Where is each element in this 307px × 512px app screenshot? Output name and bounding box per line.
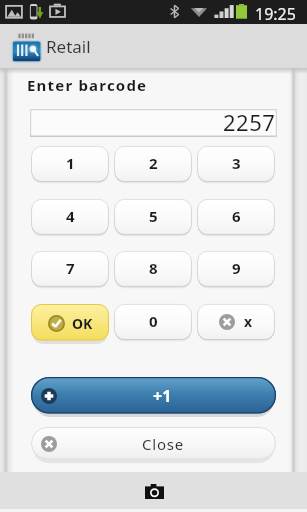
staticText: 2 [149, 153, 158, 173]
staticText: 1 [66, 153, 75, 173]
button[interactable]: 0 [114, 304, 192, 339]
button[interactable]: 9 [197, 251, 275, 286]
button[interactable]: 2257 [30, 109, 277, 137]
staticText: OK [72, 314, 93, 333]
staticText: 5 [149, 206, 158, 226]
staticText: 7 [66, 258, 75, 278]
staticText: Retail [46, 35, 91, 58]
button[interactable]: 2 [114, 146, 192, 181]
button[interactable]: 6 [197, 199, 275, 234]
staticText: 3 [232, 153, 241, 173]
button[interactable]: 5 [114, 199, 192, 234]
staticText: 6 [232, 206, 241, 226]
button[interactable]: Close [31, 427, 276, 461]
button[interactable]: 4 [31, 199, 109, 234]
staticText: Close [142, 434, 185, 454]
button[interactable]: +1 [31, 377, 276, 415]
button[interactable]: 8 [114, 251, 192, 286]
staticText: 2257 [223, 107, 276, 135]
button[interactable]: OK [31, 304, 109, 342]
button[interactable]: 3 [197, 146, 275, 181]
staticText: 4 [66, 206, 75, 226]
button[interactable]: 7 [31, 251, 109, 286]
staticText: x [244, 312, 253, 331]
staticText: 8 [149, 258, 158, 278]
staticText: Enter barcode [27, 75, 148, 95]
staticText: 9 [232, 258, 241, 278]
button[interactable]: Camera [142, 479, 166, 503]
staticText: +1 [153, 385, 172, 407]
button[interactable]: 1 [31, 146, 109, 181]
staticText: 0 [149, 311, 158, 331]
button[interactable]: x [197, 304, 275, 339]
staticText: 19:25 [255, 3, 296, 25]
